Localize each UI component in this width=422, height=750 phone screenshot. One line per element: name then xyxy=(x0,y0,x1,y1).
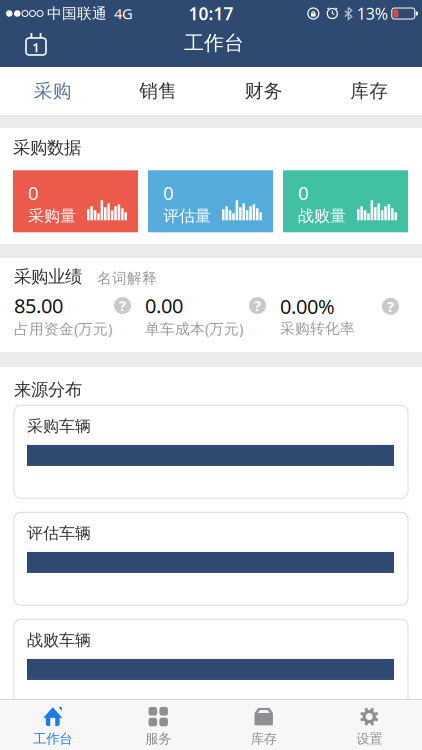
staticText: 采购数据 xyxy=(13,137,81,158)
staticText: 战败车辆 xyxy=(27,630,91,650)
staticText: 库存 xyxy=(251,731,277,747)
staticText: 单车成本(万元) xyxy=(145,319,243,338)
button[interactable]: 0 xyxy=(148,170,273,232)
staticText: 服务 xyxy=(145,731,171,747)
button[interactable]: 日历 xyxy=(0,33,47,55)
button[interactable]: 0 xyxy=(283,170,408,232)
staticText: 工作台 xyxy=(184,31,244,55)
staticText: 财务 xyxy=(245,79,283,102)
staticText: 0 xyxy=(298,180,309,205)
staticText: ? xyxy=(119,296,126,315)
staticText: 13% xyxy=(357,3,388,24)
button[interactable]: 名词解释: 采购转化率 xyxy=(382,298,399,315)
staticText: 1 xyxy=(32,38,40,56)
staticText: 0 xyxy=(28,180,39,205)
staticText: 名词解释 xyxy=(97,269,157,287)
button[interactable]: 名词解释: 占用资金(万元) xyxy=(114,297,131,314)
staticText: 评估量 xyxy=(163,206,211,226)
staticText: 占用资金(万元) xyxy=(14,319,112,338)
staticText: 库存 xyxy=(350,79,388,102)
button[interactable]: 设置 xyxy=(316,700,422,750)
staticText: 0.00 xyxy=(145,292,183,319)
staticText: 0 xyxy=(163,180,174,205)
staticText: 设置 xyxy=(356,731,382,747)
button[interactable]: 库存 xyxy=(316,67,422,115)
staticText: 战败量 xyxy=(298,206,346,226)
staticText: 采购量 xyxy=(28,206,76,226)
staticText: 85.00 xyxy=(14,292,63,319)
button[interactable]: 销售 xyxy=(105,67,211,115)
button[interactable]: 采购 xyxy=(0,67,105,115)
staticText: 销售 xyxy=(139,79,177,102)
button[interactable]: 库存 xyxy=(211,700,316,750)
staticText: 评估车辆 xyxy=(27,523,91,543)
staticText: ? xyxy=(387,297,394,316)
button[interactable]: 名词解释 xyxy=(82,269,157,287)
staticText: 采购业绩 xyxy=(14,266,82,287)
staticText: ? xyxy=(254,296,261,315)
staticText: 10:17 xyxy=(188,2,233,25)
staticText: 中国联通 xyxy=(47,4,107,22)
staticText: 工作台 xyxy=(33,731,72,747)
button[interactable]: 0 xyxy=(13,170,138,232)
staticText: 来源分布 xyxy=(14,379,82,400)
button[interactable]: 财务 xyxy=(211,67,316,115)
button[interactable]: 服务 xyxy=(105,700,211,750)
button[interactable]: 工作台 xyxy=(0,700,105,750)
staticText: 采购 xyxy=(34,79,72,102)
staticText: 4G xyxy=(114,4,133,23)
button[interactable]: 名词解释: 单车成本(万元) xyxy=(249,297,266,314)
staticText: 采购车辆 xyxy=(27,416,91,436)
staticText: 采购转化率 xyxy=(280,320,355,338)
staticText: 0.00% xyxy=(280,293,335,320)
